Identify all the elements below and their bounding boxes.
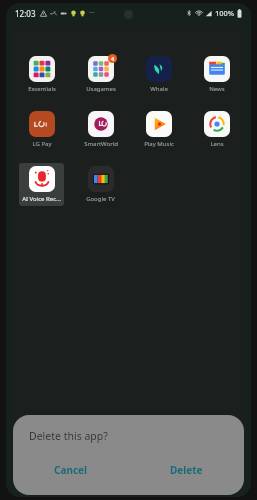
button[interactable]: LG Pay — [19, 108, 64, 151]
staticText: Delete this app? — [29, 429, 108, 443]
staticText: LG Pay — [32, 140, 52, 148]
button[interactable]: AI Voice Rec... — [19, 163, 64, 206]
staticText: Usagames — [86, 85, 116, 93]
button[interactable]: Delete — [128, 457, 244, 483]
staticText: Google TV — [86, 195, 115, 203]
staticText: AI Voice Rec... — [22, 195, 61, 203]
staticText: Play Music — [144, 140, 174, 148]
staticText: 100% — [215, 8, 235, 18]
staticText: SmartWorld — [84, 140, 118, 148]
staticText: ··· — [89, 8, 95, 18]
staticText: 12:03 — [15, 8, 36, 19]
button[interactable]: Lens — [194, 108, 239, 151]
staticText: Cancel — [54, 463, 88, 477]
staticText: Essentials — [28, 85, 56, 93]
staticText: 4 — [111, 55, 115, 62]
button[interactable]: Essentials — [19, 53, 64, 96]
button[interactable]: Whale — [136, 53, 181, 96]
button[interactable]: 4 — [78, 53, 123, 96]
button[interactable]: News — [194, 53, 239, 96]
button[interactable]: Play Music — [136, 108, 181, 151]
staticText: News — [209, 85, 225, 93]
staticText: Whale — [150, 85, 168, 93]
staticText: Lens — [210, 140, 224, 148]
button[interactable]: SmartWorld — [78, 108, 123, 151]
button[interactable]: Cancel — [13, 457, 128, 483]
staticText: Delete — [170, 463, 203, 477]
